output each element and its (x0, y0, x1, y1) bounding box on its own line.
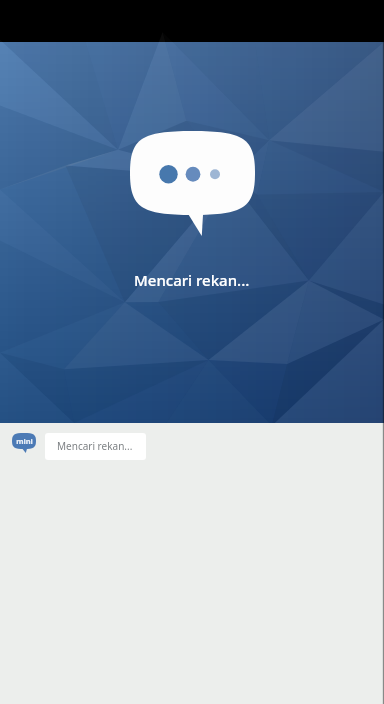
staticText: Mencari rekan... (134, 270, 250, 290)
staticText: Mencari rekan... (57, 439, 133, 453)
button[interactable]: Mencari rekan... (45, 433, 146, 460)
staticText: mini (16, 436, 33, 446)
button[interactable]: mini avatar (12, 433, 36, 454)
